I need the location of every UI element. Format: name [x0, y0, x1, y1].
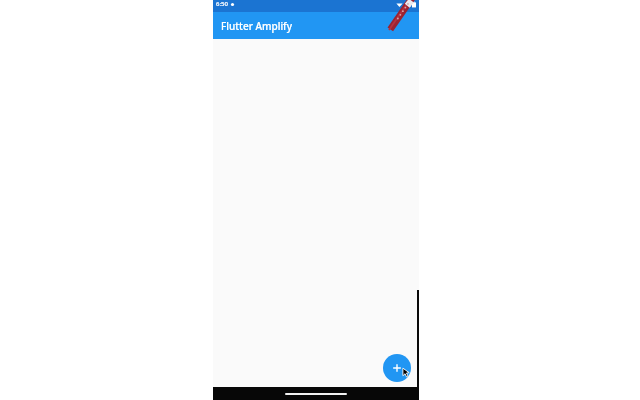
button[interactable]: Add — [383, 354, 411, 382]
staticText: Flutter Amplify — [221, 19, 292, 33]
staticText: 6:50 — [216, 0, 228, 8]
